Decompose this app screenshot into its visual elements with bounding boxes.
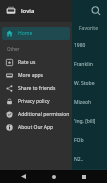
staticText: FOb bbox=[74, 137, 84, 144]
button[interactable]: Share to friends bbox=[2, 82, 70, 95]
staticText: Additional permission bbox=[18, 111, 70, 118]
button[interactable]: 1980 bbox=[0, 36, 107, 55]
button[interactable]: 'ing, [bill] bbox=[0, 112, 107, 131]
button[interactable]: Recents bbox=[77, 170, 91, 183]
button[interactable]: Home bbox=[2, 27, 70, 40]
button[interactable]: N2.. bbox=[0, 150, 107, 169]
button[interactable]: About Our App bbox=[2, 121, 70, 134]
staticText: More apps bbox=[18, 72, 43, 79]
staticText: Other bbox=[7, 46, 20, 52]
staticText: Privacy policy bbox=[18, 98, 50, 105]
button[interactable]: Home bbox=[47, 170, 61, 183]
staticText: About Our App bbox=[18, 124, 54, 131]
button[interactable]: Franklin bbox=[0, 55, 107, 74]
staticText: N2.. bbox=[74, 156, 84, 163]
staticText: lovia bbox=[21, 7, 35, 15]
staticText: 'ing, [bill] bbox=[74, 118, 96, 125]
staticText: W. Stobe bbox=[74, 80, 95, 87]
button[interactable]: Back bbox=[16, 170, 30, 183]
button[interactable]: Privacy policy bbox=[2, 95, 70, 108]
button[interactable]: FOb bbox=[0, 131, 107, 150]
button[interactable]: lovia bbox=[0, 0, 72, 22]
staticText: Franklin bbox=[74, 61, 93, 68]
button[interactable]: Rate us bbox=[2, 56, 70, 69]
button[interactable]: Mizeoh bbox=[0, 93, 107, 112]
button[interactable]: Previous bbox=[74, 172, 83, 181]
staticText: Rate us bbox=[18, 59, 36, 66]
staticText: Mizeoh bbox=[74, 99, 92, 106]
button[interactable]: Additional permission bbox=[2, 108, 70, 121]
staticText: Favorite bbox=[79, 25, 98, 32]
button[interactable]: W. Stobe bbox=[0, 74, 107, 93]
button[interactable]: Search bbox=[90, 5, 102, 17]
staticText: 1980 bbox=[74, 42, 86, 49]
button[interactable]: More apps bbox=[2, 69, 70, 82]
staticText: Home bbox=[18, 30, 33, 37]
staticText: Share to friends bbox=[18, 85, 56, 92]
button[interactable]: Pause bbox=[85, 172, 94, 181]
